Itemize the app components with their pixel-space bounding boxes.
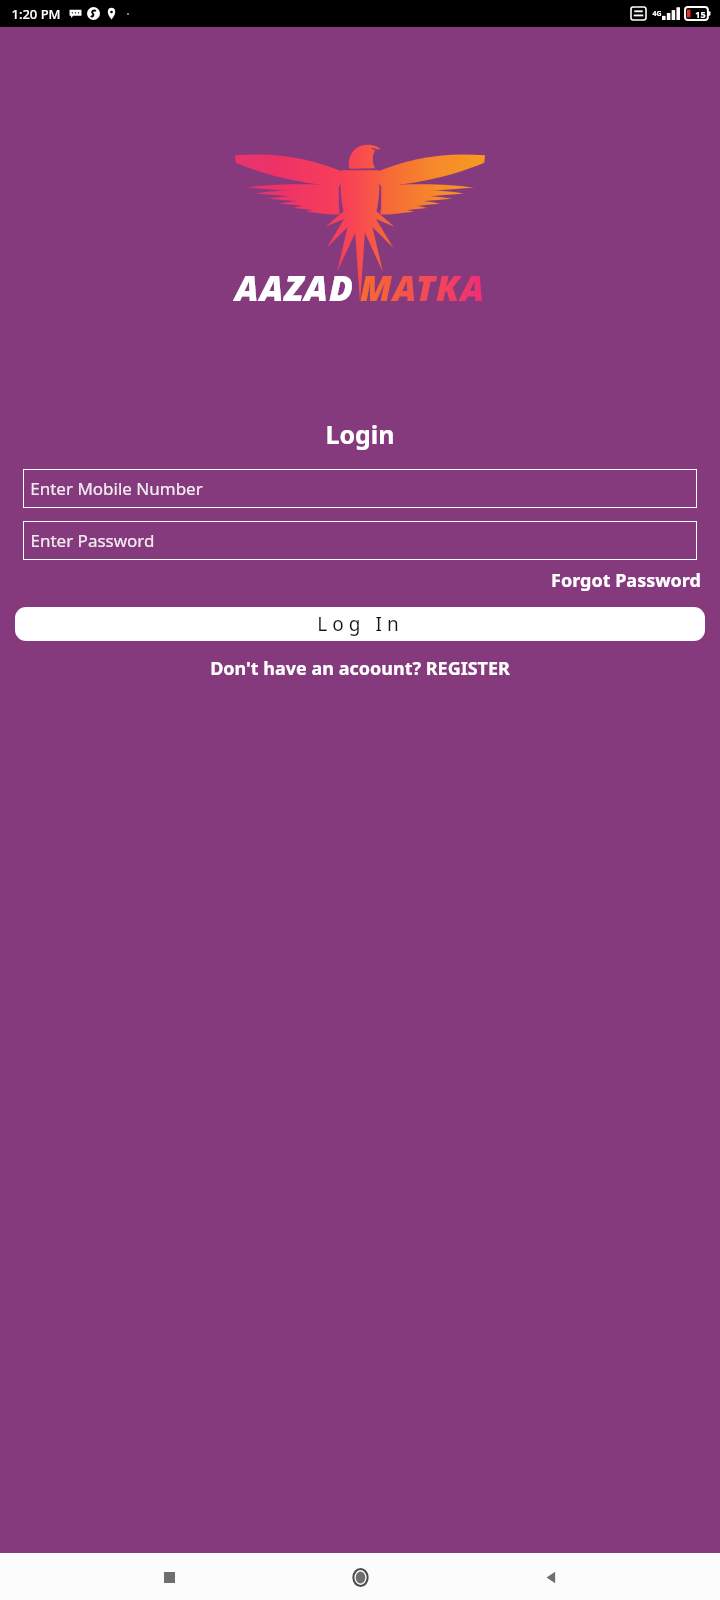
button[interactable]: Enter Password [23,521,697,560]
staticText: 15 [695,8,706,20]
staticText: 1:20 PM [11,5,61,23]
button[interactable]: Enter Mobile Number [23,469,697,508]
button[interactable]: Log In [15,607,705,641]
staticText: Forgot Password [551,568,701,593]
staticText: Log In [317,611,404,637]
staticText: Enter Password [30,529,155,552]
staticText: Login [325,417,395,451]
staticText: AAZAD [235,264,354,312]
button[interactable]: Don't have an acoount? REGISTER [206,654,514,683]
staticText: Don't have an acoount? REGISTER [210,656,510,681]
staticText: Enter Mobile Number [30,477,203,500]
button[interactable]: Recent apps [147,1555,191,1599]
button[interactable]: Home [338,1555,382,1599]
staticText: MATKA [360,264,486,312]
button[interactable]: Back [529,1555,573,1599]
staticText: 4G [652,9,662,19]
button[interactable]: Forgot Password [549,566,703,595]
